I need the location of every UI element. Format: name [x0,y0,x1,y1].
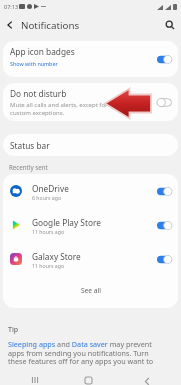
button[interactable]: Status bar [3,134,178,156]
staticText: Notifications [21,19,80,32]
staticText: Google Play Store [32,217,101,228]
button[interactable]: Back [0,15,20,35]
button[interactable]: Switch on [157,187,172,196]
button[interactable]: Back [136,370,158,385]
button[interactable]: Switch on [157,255,172,264]
staticText: OneDrive [32,183,69,194]
button[interactable]: Home [77,369,99,385]
button[interactable]: Recents [24,369,46,385]
staticText: Recently sent [9,163,48,171]
button[interactable]: Switch on [157,55,172,64]
button[interactable]: Search [159,14,181,36]
button[interactable]: OneDrive [3,174,178,208]
staticText: 11 hours ago [32,262,65,269]
staticText: Sleeping apps and Data saver may prevent… [8,339,167,366]
staticText: Mute all calls and alerts, except for cu… [10,101,108,117]
button[interactable]: Google Play Store [3,208,178,242]
button[interactable]: App icon badges [3,41,178,77]
staticText: Do not disturb [10,88,67,99]
staticText: See all [81,286,101,295]
staticText: Tip [8,325,19,335]
staticText: Galaxy Store [32,251,81,262]
staticText: 11 hours ago [32,228,65,235]
button[interactable]: See all [3,276,178,304]
button[interactable]: Switch on [157,221,172,230]
button[interactable]: Galaxy Store [3,242,178,276]
staticText: Show with number [10,60,58,67]
staticText: Status bar [10,140,50,151]
staticText: App icon badges [10,46,75,57]
staticText: 6 hours ago [32,194,62,201]
staticText: 07:13 [4,3,19,10]
button[interactable]: Do not disturb [3,83,178,121]
button[interactable]: Switch off [157,98,172,107]
